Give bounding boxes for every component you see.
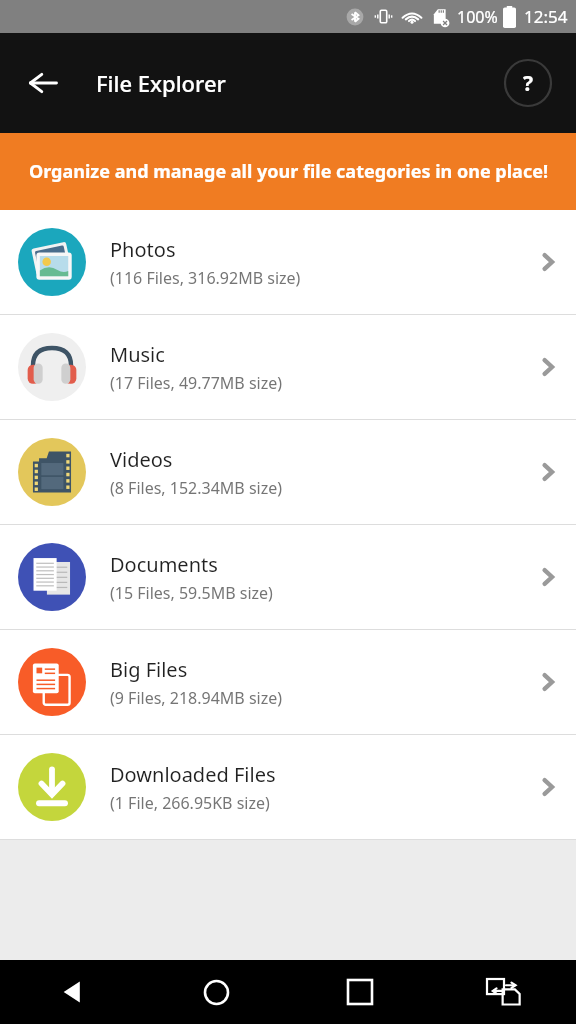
staticText: 12:54 <box>524 5 568 28</box>
staticText: 100% <box>457 6 498 28</box>
button[interactable]: Photos <box>0 210 576 314</box>
button[interactable]: Big Files <box>0 630 576 734</box>
staticText: Music <box>110 341 165 368</box>
button[interactable]: Organize and manage all your file catego… <box>0 133 576 210</box>
staticText: (1 File, 266.95KB size) <box>110 792 270 814</box>
button[interactable]: Back <box>0 960 144 1024</box>
staticText: Big Files <box>110 656 188 683</box>
button[interactable]: Help <box>502 57 554 109</box>
staticText: Downloaded Files <box>110 761 276 788</box>
staticText: (17 Files, 49.77MB size) <box>110 372 283 394</box>
staticText: (15 Files, 59.5MB size) <box>110 582 273 604</box>
button[interactable]: Switch app <box>432 960 576 1024</box>
staticText: Photos <box>110 236 176 263</box>
staticText: (9 Files, 218.94MB size) <box>110 687 283 709</box>
staticText: Videos <box>110 446 173 473</box>
staticText: Documents <box>110 551 218 578</box>
button[interactable]: Videos <box>0 420 576 524</box>
staticText: (116 Files, 316.92MB size) <box>110 267 301 289</box>
staticText: ? <box>523 69 534 98</box>
button[interactable]: Recent apps <box>288 960 432 1024</box>
button[interactable]: Home <box>144 960 288 1024</box>
button[interactable]: Downloaded Files <box>0 735 576 839</box>
button[interactable]: Music <box>0 315 576 419</box>
button[interactable]: Back <box>14 54 72 112</box>
button[interactable]: Documents <box>0 525 576 629</box>
staticText: File Explorer <box>96 68 226 98</box>
staticText: (8 Files, 152.34MB size) <box>110 477 283 499</box>
staticText: Organize and manage all your file catego… <box>29 159 548 184</box>
